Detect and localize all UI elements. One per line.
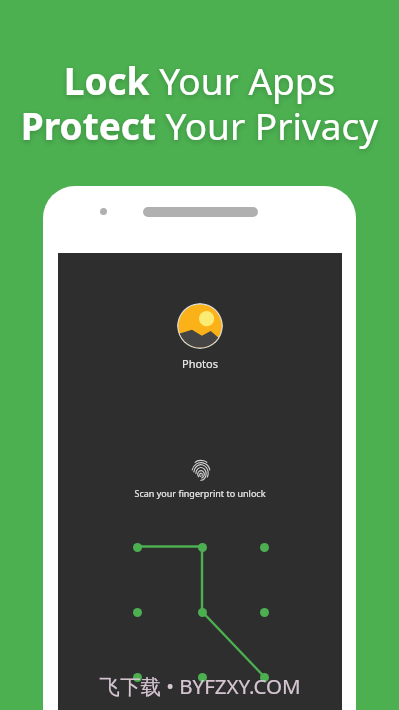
button[interactable]: Pattern dot 4	[115, 590, 159, 634]
button[interactable]: Pattern dot 7	[115, 655, 159, 699]
button[interactable]: Fingerprint scanner	[192, 460, 210, 482]
button[interactable]: Pattern dot 1	[115, 525, 159, 569]
button[interactable]: Pattern dot 9	[242, 655, 286, 699]
staticText: 飞下载 • BYFZXY.COM	[58, 672, 342, 700]
button[interactable]: Pattern dot 2	[180, 525, 224, 569]
button[interactable]: Pattern dot 8	[180, 655, 224, 699]
button[interactable]: Pattern dot 3	[242, 525, 286, 569]
staticText: Protect Your Privacy	[0, 100, 399, 150]
button[interactable]: Photos app, locked	[177, 303, 223, 349]
button[interactable]: Pattern dot 5	[180, 590, 224, 634]
staticText: Scan your fingerprint to unlock	[58, 487, 342, 499]
button[interactable]: Pattern dot 6	[242, 590, 286, 634]
staticText: Lock Your Apps	[0, 55, 399, 105]
staticText: Photos	[58, 356, 342, 371]
